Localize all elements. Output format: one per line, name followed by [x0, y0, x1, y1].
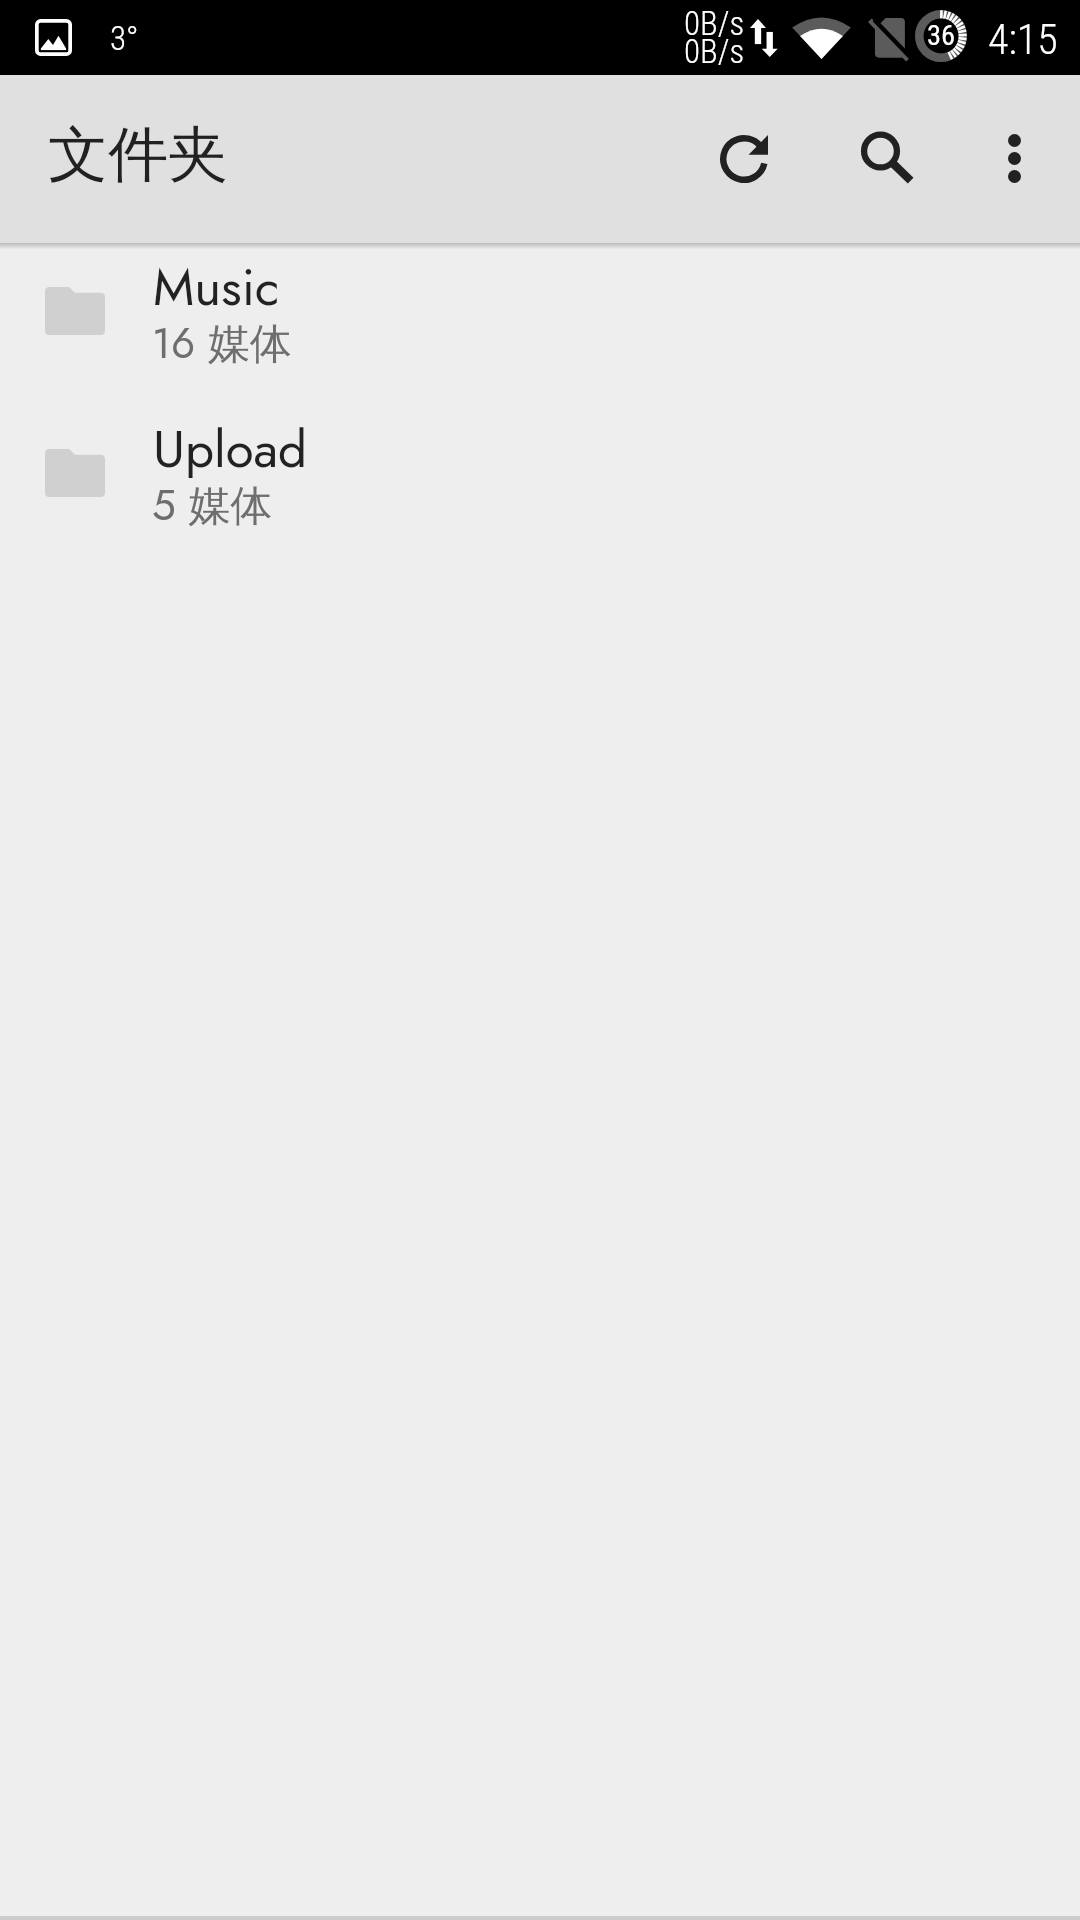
staticText: 36 [927, 19, 956, 52]
button[interactable]: Refresh [648, 126, 792, 258]
button[interactable]: Upload [0, 405, 1080, 567]
staticText: 0B/s [684, 32, 745, 71]
button[interactable]: Search [792, 126, 936, 258]
staticText: 文件夹 [48, 117, 228, 193]
staticText: Music [153, 250, 280, 324]
staticText: 5 媒体 [152, 475, 273, 536]
staticText: 16 媒体 [152, 313, 292, 374]
staticText: 3° [110, 19, 139, 58]
staticText: 4:15 [988, 15, 1058, 64]
staticText: Upload [153, 412, 308, 486]
staticText: 0B/s [684, 4, 745, 43]
button[interactable]: More options [942, 86, 1080, 230]
button[interactable]: Music [0, 243, 1080, 405]
